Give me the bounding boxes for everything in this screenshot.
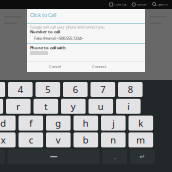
button[interactable]: i — [116, 99, 141, 114]
button[interactable]: j — [101, 116, 126, 131]
button[interactable]: n — [101, 132, 126, 147]
staticText: 5 — [45, 83, 50, 96]
staticText: k — [138, 117, 143, 129]
button[interactable]: y — [61, 99, 86, 114]
staticText: 4 — [18, 83, 23, 96]
staticText: REFRESH — [137, 3, 147, 6]
staticText: Phone to call with — [30, 45, 66, 50]
staticText: m — [136, 134, 145, 146]
staticText: b — [83, 134, 89, 146]
button[interactable]: k — [128, 116, 153, 131]
button[interactable]: b — [73, 132, 98, 147]
staticText: v — [56, 134, 61, 146]
staticText: r — [16, 100, 20, 112]
button[interactable]: r — [6, 99, 31, 114]
button[interactable]: Search — [150, 0, 172, 9]
button[interactable]: Period — [103, 149, 127, 164]
staticText: x — [1, 134, 6, 146]
staticText: y — [71, 100, 76, 112]
staticText: ↵ — [139, 153, 145, 160]
button[interactable]: 5 — [35, 82, 60, 97]
staticText: Google will call your phone and connect … — [30, 24, 105, 29]
button[interactable]: 6 — [63, 82, 88, 97]
staticText: g — [55, 117, 61, 129]
button[interactable]: 4 — [8, 82, 33, 97]
button[interactable]: f — [18, 116, 43, 131]
button[interactable]: d — [0, 116, 16, 131]
staticText: Fake (Home) <500-555-1234> — [34, 35, 83, 41]
button[interactable]: v — [46, 132, 71, 147]
staticText: d — [0, 117, 6, 129]
staticText: f — [29, 117, 32, 129]
staticText: . — [114, 152, 116, 161]
button[interactable]: 7 — [90, 82, 115, 97]
staticText: Click to Call — [30, 11, 56, 19]
staticText: 8 — [128, 83, 133, 96]
staticText: Number to call — [30, 29, 60, 34]
button[interactable]: e — [0, 99, 3, 114]
button[interactable]: h — [73, 116, 98, 131]
button[interactable]: u — [88, 99, 113, 114]
button[interactable]: Cancel — [41, 61, 69, 71]
staticText: SEARCH — [158, 3, 168, 6]
button[interactable]: m — [128, 132, 153, 147]
staticText: 7 — [100, 83, 105, 96]
staticText: 6 — [73, 83, 78, 96]
button[interactable]: t — [33, 99, 58, 114]
staticText: i — [127, 100, 129, 112]
button[interactable]: Refresh — [129, 0, 150, 9]
button[interactable]: Compose — [107, 0, 129, 9]
button[interactable]: c — [18, 132, 43, 147]
staticText: t — [44, 100, 47, 112]
button[interactable]: x — [0, 132, 16, 147]
staticText: h — [83, 117, 89, 129]
staticText: c — [29, 134, 33, 146]
staticText: Cancel — [49, 64, 61, 69]
staticText: Connect — [92, 64, 106, 69]
staticText: COMPOSE — [114, 3, 126, 6]
button[interactable]: 3 — [0, 82, 5, 97]
button[interactable]: Return — [130, 149, 155, 164]
staticText: u — [98, 100, 104, 112]
button[interactable]: Space — [8, 149, 100, 164]
staticText: n — [110, 134, 116, 146]
button[interactable]: Connect — [85, 61, 113, 71]
button[interactable]: g — [46, 116, 71, 131]
button[interactable]: 8 — [118, 82, 143, 97]
staticText: j — [112, 117, 114, 129]
